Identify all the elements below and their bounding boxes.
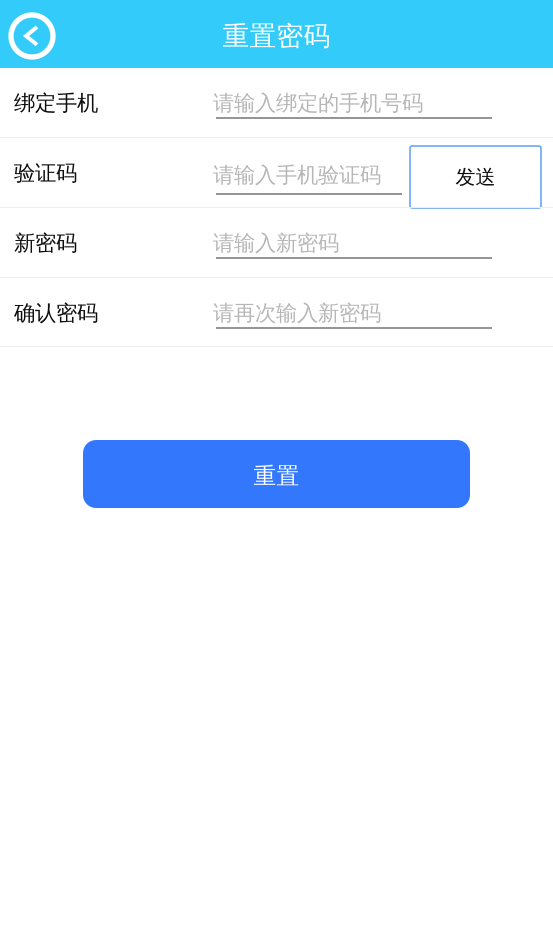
staticText: 请再次输入新密码 <box>213 300 381 326</box>
staticText: 发送 <box>455 165 495 189</box>
staticText: 验证码 <box>14 160 77 186</box>
staticText: 绑定手机 <box>14 90 98 116</box>
button[interactable]: Back <box>0 0 66 68</box>
staticText: 确认密码 <box>14 300 98 326</box>
staticText: 请输入手机验证码 <box>213 162 381 188</box>
staticText: 重置密码 <box>222 20 330 52</box>
staticText: 新密码 <box>14 230 77 256</box>
staticText: 重置 <box>253 462 299 490</box>
staticText: 请输入新密码 <box>213 230 339 256</box>
staticText: 请输入绑定的手机号码 <box>213 90 423 116</box>
button[interactable]: 重置 <box>83 440 470 508</box>
button[interactable]: 发送 <box>410 146 541 208</box>
